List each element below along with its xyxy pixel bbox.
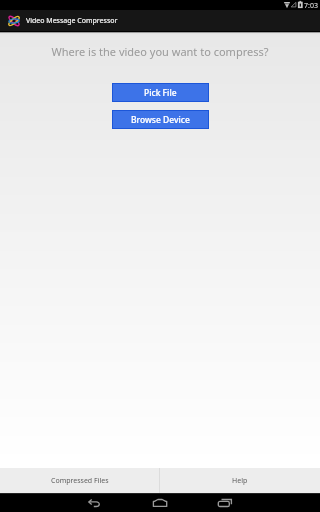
button[interactable]: Compressed Files <box>0 468 159 493</box>
staticText: Help <box>232 476 248 486</box>
button[interactable]: Recent apps <box>208 493 242 512</box>
staticText: Video Message Compressor <box>26 16 118 26</box>
button[interactable]: Back <box>78 493 112 512</box>
button[interactable]: Help <box>160 468 320 493</box>
staticText: Pick File <box>144 87 177 99</box>
button[interactable]: Pick File <box>113 84 208 101</box>
staticText: Compressed Files <box>51 476 109 486</box>
staticText: Browse Device <box>131 114 190 126</box>
staticText: 7:03 <box>304 1 318 11</box>
button[interactable]: Home <box>143 493 177 512</box>
button[interactable]: Browse Device <box>113 111 208 128</box>
staticText: Where is the video you want to compress? <box>51 44 269 59</box>
